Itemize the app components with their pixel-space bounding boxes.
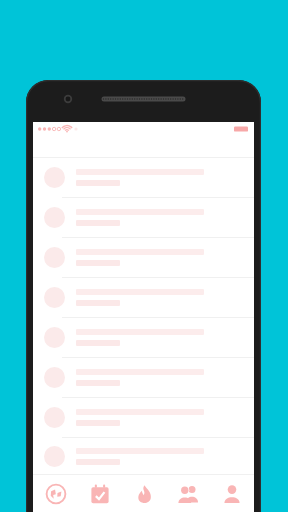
button[interactable] <box>33 318 254 358</box>
button[interactable] <box>33 398 254 438</box>
button[interactable] <box>33 278 254 318</box>
button[interactable]: Profile <box>210 475 254 512</box>
button[interactable]: Trending <box>122 475 166 512</box>
button[interactable]: Explore <box>33 475 78 512</box>
button[interactable] <box>33 358 254 398</box>
button[interactable] <box>33 438 254 474</box>
button[interactable] <box>33 158 254 198</box>
button[interactable]: Groups <box>166 475 210 512</box>
button[interactable] <box>33 198 254 238</box>
button[interactable]: Events <box>78 475 122 512</box>
button[interactable] <box>33 238 254 278</box>
